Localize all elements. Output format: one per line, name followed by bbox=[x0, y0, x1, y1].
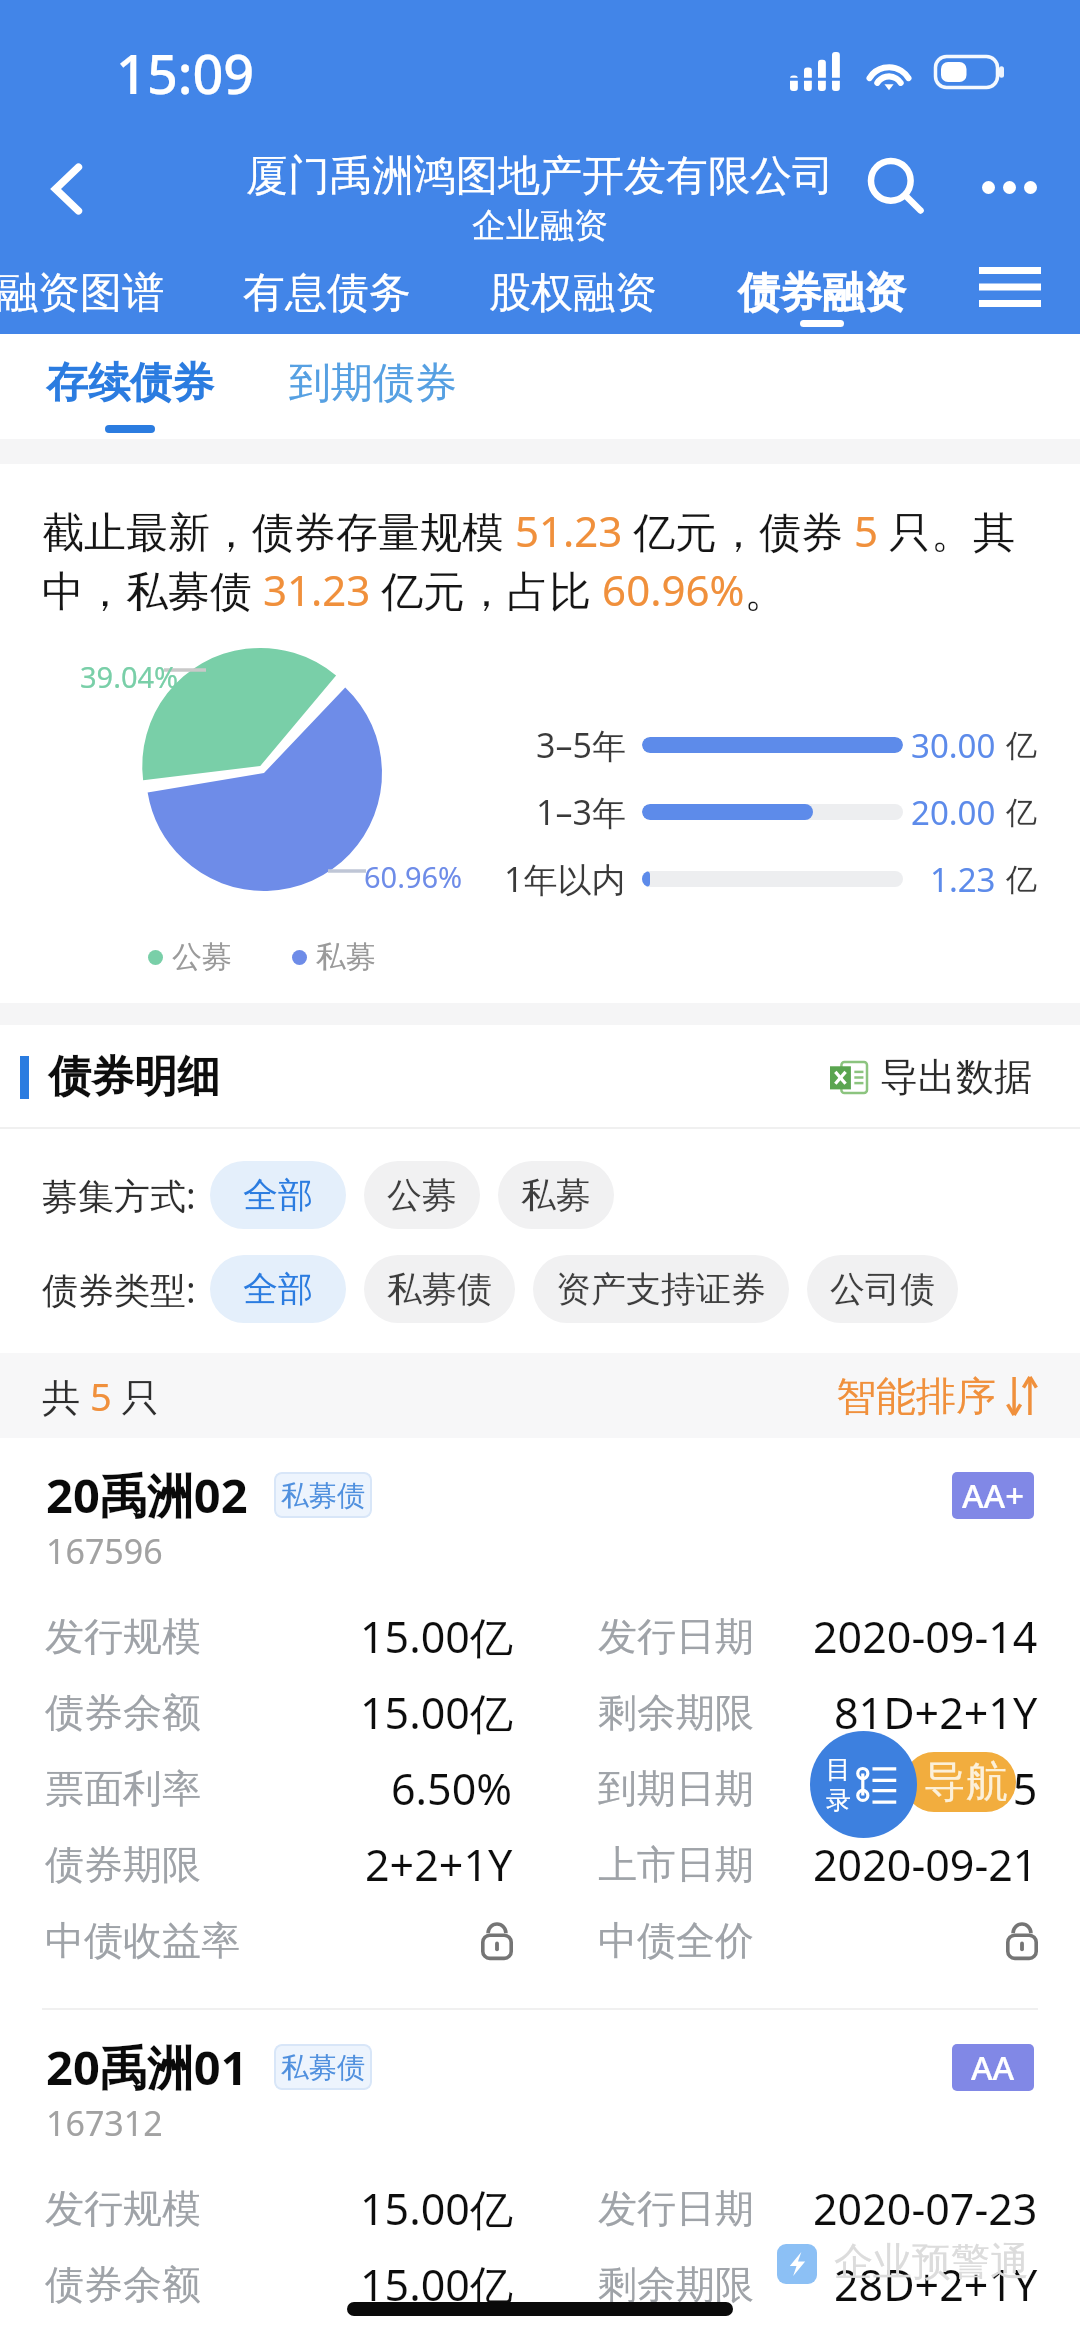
button[interactable]: 存续债券 bbox=[30, 334, 230, 439]
staticText: 目 bbox=[826, 1754, 851, 1785]
button[interactable]: 目录 Table of contents bbox=[810, 1731, 917, 1838]
staticText: 15.00亿 bbox=[360, 2179, 513, 2238]
staticText: 公司债 bbox=[830, 1267, 935, 1311]
staticText: 债券期限 bbox=[45, 1840, 201, 1889]
staticText: 15.00亿 bbox=[360, 1683, 513, 1742]
staticText: 15:09 bbox=[116, 36, 255, 110]
staticText: 2020-09-14 bbox=[813, 1607, 1038, 1666]
staticText: 企业融资 bbox=[472, 204, 608, 247]
staticText: 债券余额 bbox=[45, 2260, 201, 2309]
staticText: 全部 bbox=[243, 1173, 313, 1217]
staticText: 票面利率 bbox=[45, 1764, 201, 1813]
staticText: 公募 bbox=[387, 1173, 457, 1217]
staticText: 债券融资 bbox=[738, 267, 906, 320]
staticText: 亿 bbox=[1006, 726, 1037, 765]
button[interactable]: 资产支持证券 bbox=[533, 1255, 789, 1323]
button[interactable]: 公募 bbox=[364, 1161, 480, 1229]
staticText: 到期日期 bbox=[598, 1764, 754, 1813]
staticText: 中债全价 bbox=[598, 1916, 754, 1965]
staticText: 企业预警通 bbox=[834, 2237, 1029, 2286]
button[interactable]: 公司债 bbox=[807, 1255, 958, 1323]
staticText: 私募债 bbox=[387, 1267, 492, 1311]
button[interactable]: Menu bbox=[940, 248, 1080, 334]
staticText: 2+2+1Y bbox=[365, 1835, 513, 1894]
staticText: 有息债务 bbox=[243, 267, 411, 320]
staticText: 20.00 bbox=[911, 790, 996, 835]
staticText: 债券余额 bbox=[45, 1688, 201, 1737]
button[interactable]: 私募 bbox=[498, 1161, 614, 1229]
staticText: AA+ bbox=[962, 1473, 1025, 1518]
staticText: 融资图谱 bbox=[0, 267, 164, 320]
staticText: 债券类型: bbox=[42, 1265, 196, 1314]
staticText: 15.00亿 bbox=[360, 2255, 513, 2314]
staticText: 6.50% bbox=[391, 1759, 513, 1818]
staticText: 导航 bbox=[924, 1756, 1008, 1809]
button[interactable]: 到期债券 bbox=[273, 334, 473, 439]
staticText: 公募 bbox=[172, 938, 232, 976]
staticText: 发行规模 bbox=[45, 1612, 201, 1661]
button[interactable]: 全部 bbox=[210, 1161, 346, 1229]
staticText: 存续债券 bbox=[46, 357, 214, 410]
staticText: 亿 bbox=[1006, 860, 1037, 899]
button[interactable]: Search bbox=[852, 144, 942, 234]
button[interactable]: 全部 bbox=[210, 1255, 346, 1323]
button[interactable]: 股权融资 bbox=[481, 248, 665, 334]
staticText: 资产支持证券 bbox=[556, 1267, 766, 1311]
staticText: 1年以内 bbox=[504, 856, 626, 902]
staticText: 募集方式: bbox=[42, 1171, 196, 1220]
button[interactable]: 融资图谱 bbox=[0, 248, 172, 334]
staticText: 发行日期 bbox=[598, 1612, 754, 1661]
button[interactable]: 20禹洲02 bbox=[42, 1438, 1038, 2008]
staticText: 发行规模 bbox=[45, 2184, 201, 2233]
button[interactable]: More options bbox=[962, 144, 1052, 234]
staticText: 中债收益率 bbox=[45, 1916, 240, 1965]
staticText: 发行日期 bbox=[598, 2184, 754, 2233]
button[interactable]: 有息债务 bbox=[235, 248, 419, 334]
staticText: 股权融资 bbox=[489, 267, 657, 320]
staticText: 15.00亿 bbox=[360, 1607, 513, 1666]
staticText: 2025-09-15 bbox=[813, 1759, 1038, 1818]
button[interactable]: 智能排序 bbox=[836, 1371, 1040, 1421]
staticText: 厦门禹洲鸿图地产开发有限公司 bbox=[246, 150, 834, 203]
staticText: 智能排序 bbox=[836, 1371, 996, 1421]
staticText: 私募 bbox=[316, 938, 376, 976]
staticText: 上市日期 bbox=[598, 1840, 754, 1889]
staticText: 60.96% bbox=[364, 857, 463, 896]
staticText: 3–5年 bbox=[536, 722, 626, 768]
staticText: 2020-07-23 bbox=[813, 2179, 1038, 2238]
button[interactable]: 私募债 bbox=[364, 1255, 515, 1323]
button[interactable]: 导出数据 bbox=[830, 1053, 1032, 1101]
button[interactable]: Back bbox=[22, 144, 112, 234]
staticText: 39.04% bbox=[80, 657, 179, 696]
staticText: 到期债券 bbox=[289, 357, 457, 410]
staticText: 28D+2+1Y bbox=[834, 2255, 1038, 2314]
staticText: 167312 bbox=[46, 2100, 163, 2146]
staticText: 导出数据 bbox=[880, 1053, 1032, 1101]
staticText: 81D+2+1Y bbox=[834, 1683, 1038, 1742]
button[interactable]: 导航 bbox=[904, 1752, 1016, 1812]
staticText: 亿 bbox=[1006, 793, 1037, 832]
staticText: 167596 bbox=[46, 1528, 163, 1574]
staticText: AA bbox=[971, 2045, 1015, 2090]
staticText: 债券明细 bbox=[48, 1050, 220, 1104]
staticText: 30.00 bbox=[911, 723, 996, 768]
staticText: 录 bbox=[826, 1785, 851, 1816]
staticText: 2020-09-21 bbox=[813, 1835, 1038, 1894]
staticText: 1–3年 bbox=[536, 789, 626, 835]
staticText: 私募债 bbox=[281, 1478, 365, 1513]
staticText: 剩余期限 bbox=[598, 2260, 754, 2309]
staticText: 截止最新，债券存量规模 51.23 亿元，债券 5 只。其中，私募债 31.23… bbox=[42, 502, 1050, 618]
staticText: 共 5 只 bbox=[42, 1370, 160, 1422]
button[interactable]: 债券融资 bbox=[730, 248, 914, 334]
button[interactable]: 20禹洲01 bbox=[42, 2010, 1038, 2322]
staticText: 剩余期限 bbox=[598, 1688, 754, 1737]
staticText: 20禹洲02 bbox=[46, 1463, 248, 1527]
staticText: 20禹洲01 bbox=[46, 2035, 248, 2099]
staticText: 全部 bbox=[243, 1267, 313, 1311]
staticText: 私募债 bbox=[281, 2050, 365, 2085]
staticText: 1.23 bbox=[930, 857, 996, 902]
staticText: 私募 bbox=[521, 1173, 591, 1217]
